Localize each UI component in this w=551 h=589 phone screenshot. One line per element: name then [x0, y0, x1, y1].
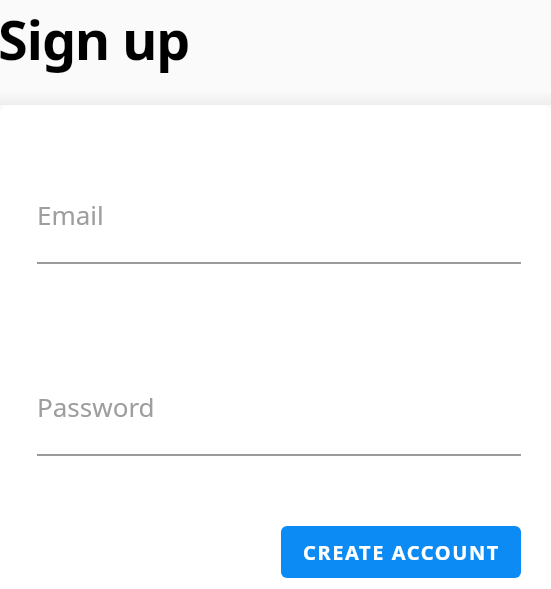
button[interactable]: CREATE ACCOUNT [281, 526, 521, 578]
staticText: Sign up [0, 2, 190, 76]
staticText: CREATE ACCOUNT [303, 539, 500, 566]
button[interactable]: Password [37, 389, 155, 424]
button[interactable]: Email [37, 197, 104, 232]
